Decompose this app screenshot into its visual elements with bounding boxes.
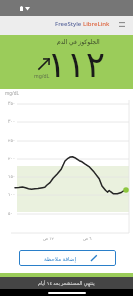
staticText: FreeStyle bbox=[55, 20, 83, 28]
staticText: ينتهي المستشعر بعد ١٤ أيام bbox=[38, 280, 95, 287]
button[interactable]: Menu bbox=[115, 18, 128, 31]
staticText: mg/dL bbox=[34, 73, 50, 80]
staticText: إضافة ملاحظة bbox=[44, 255, 76, 262]
staticText: الجلوكوز في الدم bbox=[57, 38, 100, 46]
staticText: ١٢ ص bbox=[43, 236, 54, 242]
staticText: ٢٥٠ bbox=[8, 138, 16, 143]
staticText: ٦ ص bbox=[83, 236, 92, 242]
staticText: ١٥٠ bbox=[8, 174, 16, 179]
button[interactable]: إضافة ملاحظة bbox=[19, 250, 116, 266]
staticText: LibreLink bbox=[83, 20, 110, 28]
staticText: ١٠٠ bbox=[8, 192, 16, 197]
staticText: mg/dL bbox=[5, 90, 19, 96]
staticText: ١١٢ bbox=[47, 44, 106, 86]
staticText: ٣٥٠ bbox=[8, 101, 16, 106]
staticText: ٥٠ bbox=[8, 211, 13, 216]
staticText: ٢٠٠ bbox=[8, 156, 16, 161]
staticText: ٣٠٠ bbox=[8, 119, 16, 124]
